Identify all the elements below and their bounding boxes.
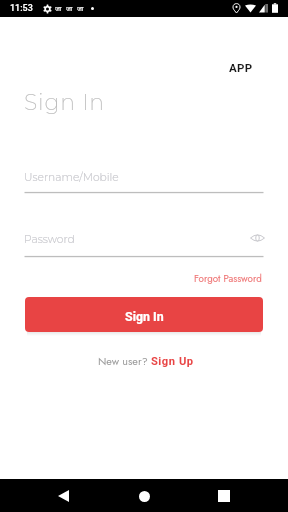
button[interactable]: APP [225, 57, 257, 78]
button[interactable]: Back [47, 480, 79, 512]
staticText: जा [55, 4, 62, 13]
staticText: Password [24, 233, 75, 246]
button[interactable]: Username/Mobile [23, 166, 263, 193]
staticText: New user? Sign Up [98, 353, 194, 369]
staticText: जा [66, 4, 73, 13]
staticText: Username/Mobile [24, 171, 119, 184]
button[interactable]: Password [23, 228, 263, 255]
staticText: Sign In [24, 89, 105, 116]
button[interactable]: Sign In [25, 297, 263, 332]
button[interactable]: Home [128, 480, 160, 512]
button[interactable]: Recent apps [208, 480, 240, 512]
button[interactable]: Forgot Password [191, 269, 265, 289]
button[interactable]: Show password [247, 229, 267, 247]
staticText: Forgot Password [194, 272, 262, 286]
button[interactable]: New user? Sign Up [94, 350, 198, 372]
staticText: Sign In [125, 309, 164, 324]
staticText: जा [77, 4, 84, 13]
staticText: 11:53 [10, 3, 33, 14]
staticText: APP [229, 61, 253, 74]
